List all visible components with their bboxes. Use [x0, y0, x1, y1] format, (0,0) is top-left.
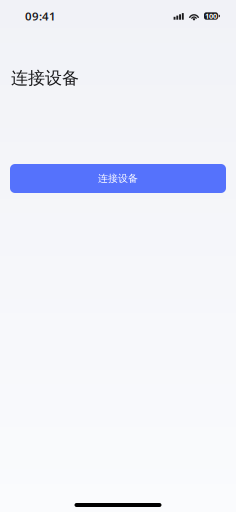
staticText: 连接设备 [98, 172, 138, 185]
staticText: 09:41 [25, 8, 56, 24]
staticText: 100 [205, 11, 217, 21]
button[interactable]: 连接设备 [10, 164, 226, 193]
staticText: 连接设备 [11, 67, 79, 89]
